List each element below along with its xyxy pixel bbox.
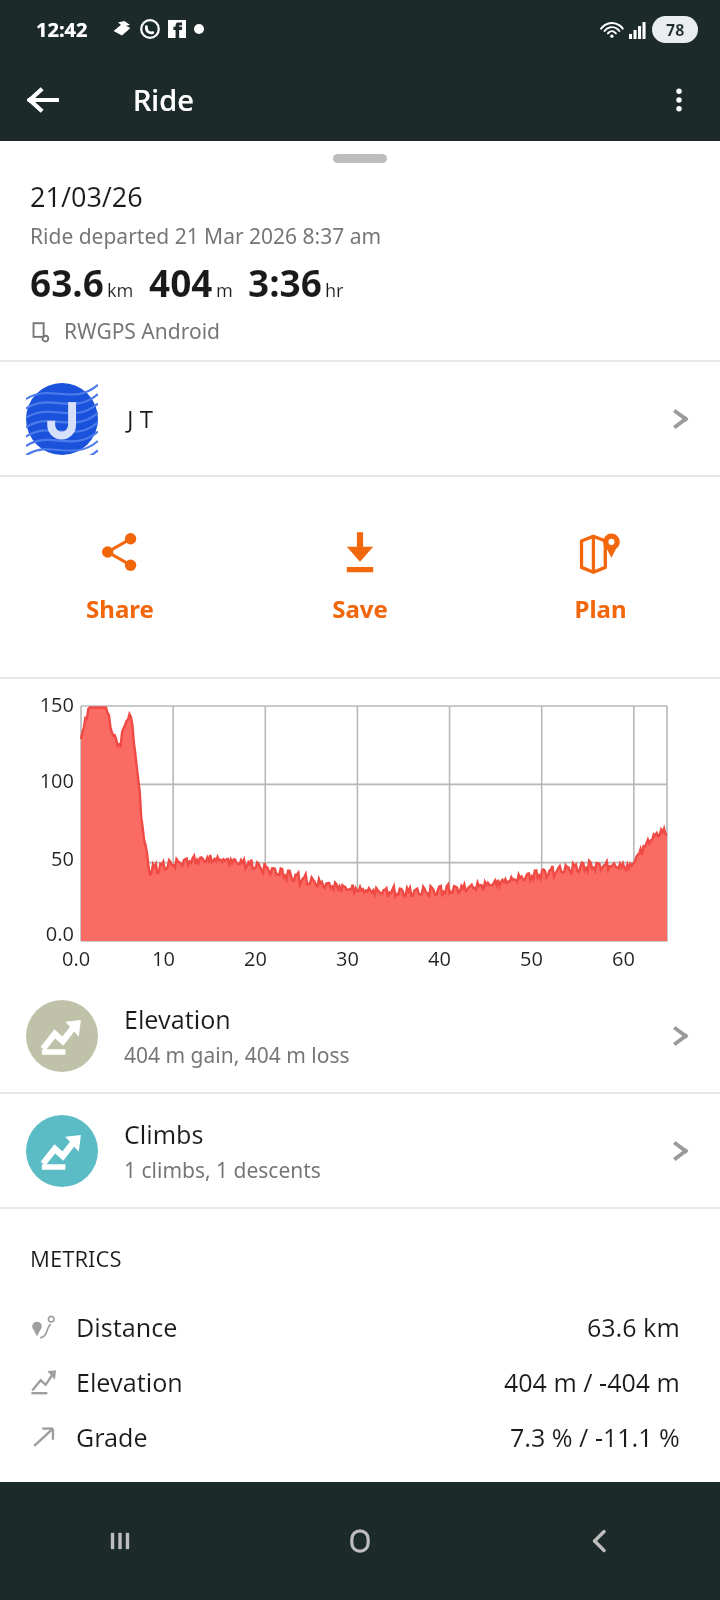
button[interactable]: Back — [14, 71, 72, 129]
staticText: hr — [325, 278, 344, 303]
staticText: METRICS — [30, 1243, 122, 1273]
staticText: 63.6 km — [587, 1310, 680, 1344]
staticText: 20 — [244, 945, 267, 972]
staticText: m — [216, 278, 233, 303]
staticText: Share — [86, 592, 154, 625]
staticText: 50 — [520, 945, 543, 972]
button[interactable]: Home — [240, 1482, 480, 1600]
staticText: 100 — [14, 767, 74, 794]
button[interactable]: Recent apps — [0, 1482, 240, 1600]
staticText: 150 — [14, 691, 74, 718]
button[interactable]: Back — [480, 1482, 720, 1600]
staticText: Ride departed 21 Mar 2026 8:37 am — [30, 222, 382, 251]
button[interactable]: Grade — [0, 1409, 720, 1464]
staticText: km — [107, 278, 134, 303]
staticText: J T — [127, 402, 668, 435]
button[interactable]: Save — [240, 512, 480, 643]
staticText: 30 — [336, 945, 359, 972]
staticText: Ride — [133, 80, 194, 119]
staticText: 63.6 — [30, 257, 104, 307]
staticText: 50 — [14, 845, 74, 872]
staticText: 404 m / -404 m — [504, 1365, 680, 1399]
staticText: 7.3 % / -11.1 % — [510, 1420, 680, 1454]
staticText: Grade — [76, 1420, 510, 1454]
button[interactable]: Elevation — [0, 979, 720, 1092]
button[interactable]: Plan — [480, 512, 720, 643]
button[interactable]: J T — [0, 362, 720, 475]
staticText: 21/03/26 — [30, 178, 143, 215]
button[interactable]: Climbs — [0, 1094, 720, 1207]
staticText: 12:42 — [36, 16, 88, 43]
staticText: 60 — [612, 945, 635, 972]
staticText: Save — [332, 592, 388, 625]
button[interactable]: Distance — [0, 1299, 720, 1354]
staticText: 78 — [666, 19, 685, 41]
staticText: 0.0 — [62, 945, 91, 972]
staticText: Distance — [76, 1310, 587, 1344]
staticText: Plan — [574, 592, 627, 625]
staticText: Climbs — [124, 1117, 204, 1151]
staticText: 40 — [428, 945, 451, 972]
staticText: 404 m gain, 404 m loss — [124, 1041, 350, 1070]
staticText: Elevation — [124, 1002, 231, 1036]
staticText: 404 — [149, 257, 213, 307]
staticText: 3:36 — [248, 257, 322, 307]
button[interactable]: Share — [0, 512, 240, 643]
button[interactable]: Elevation — [0, 1354, 720, 1409]
staticText: RWGPS Android — [64, 317, 220, 346]
button[interactable]: More options — [652, 73, 706, 127]
staticText: 10 — [152, 945, 175, 972]
staticText: Elevation — [76, 1365, 504, 1399]
staticText: 0.0 — [14, 920, 74, 947]
staticText: 1 climbs, 1 descents — [124, 1156, 321, 1185]
